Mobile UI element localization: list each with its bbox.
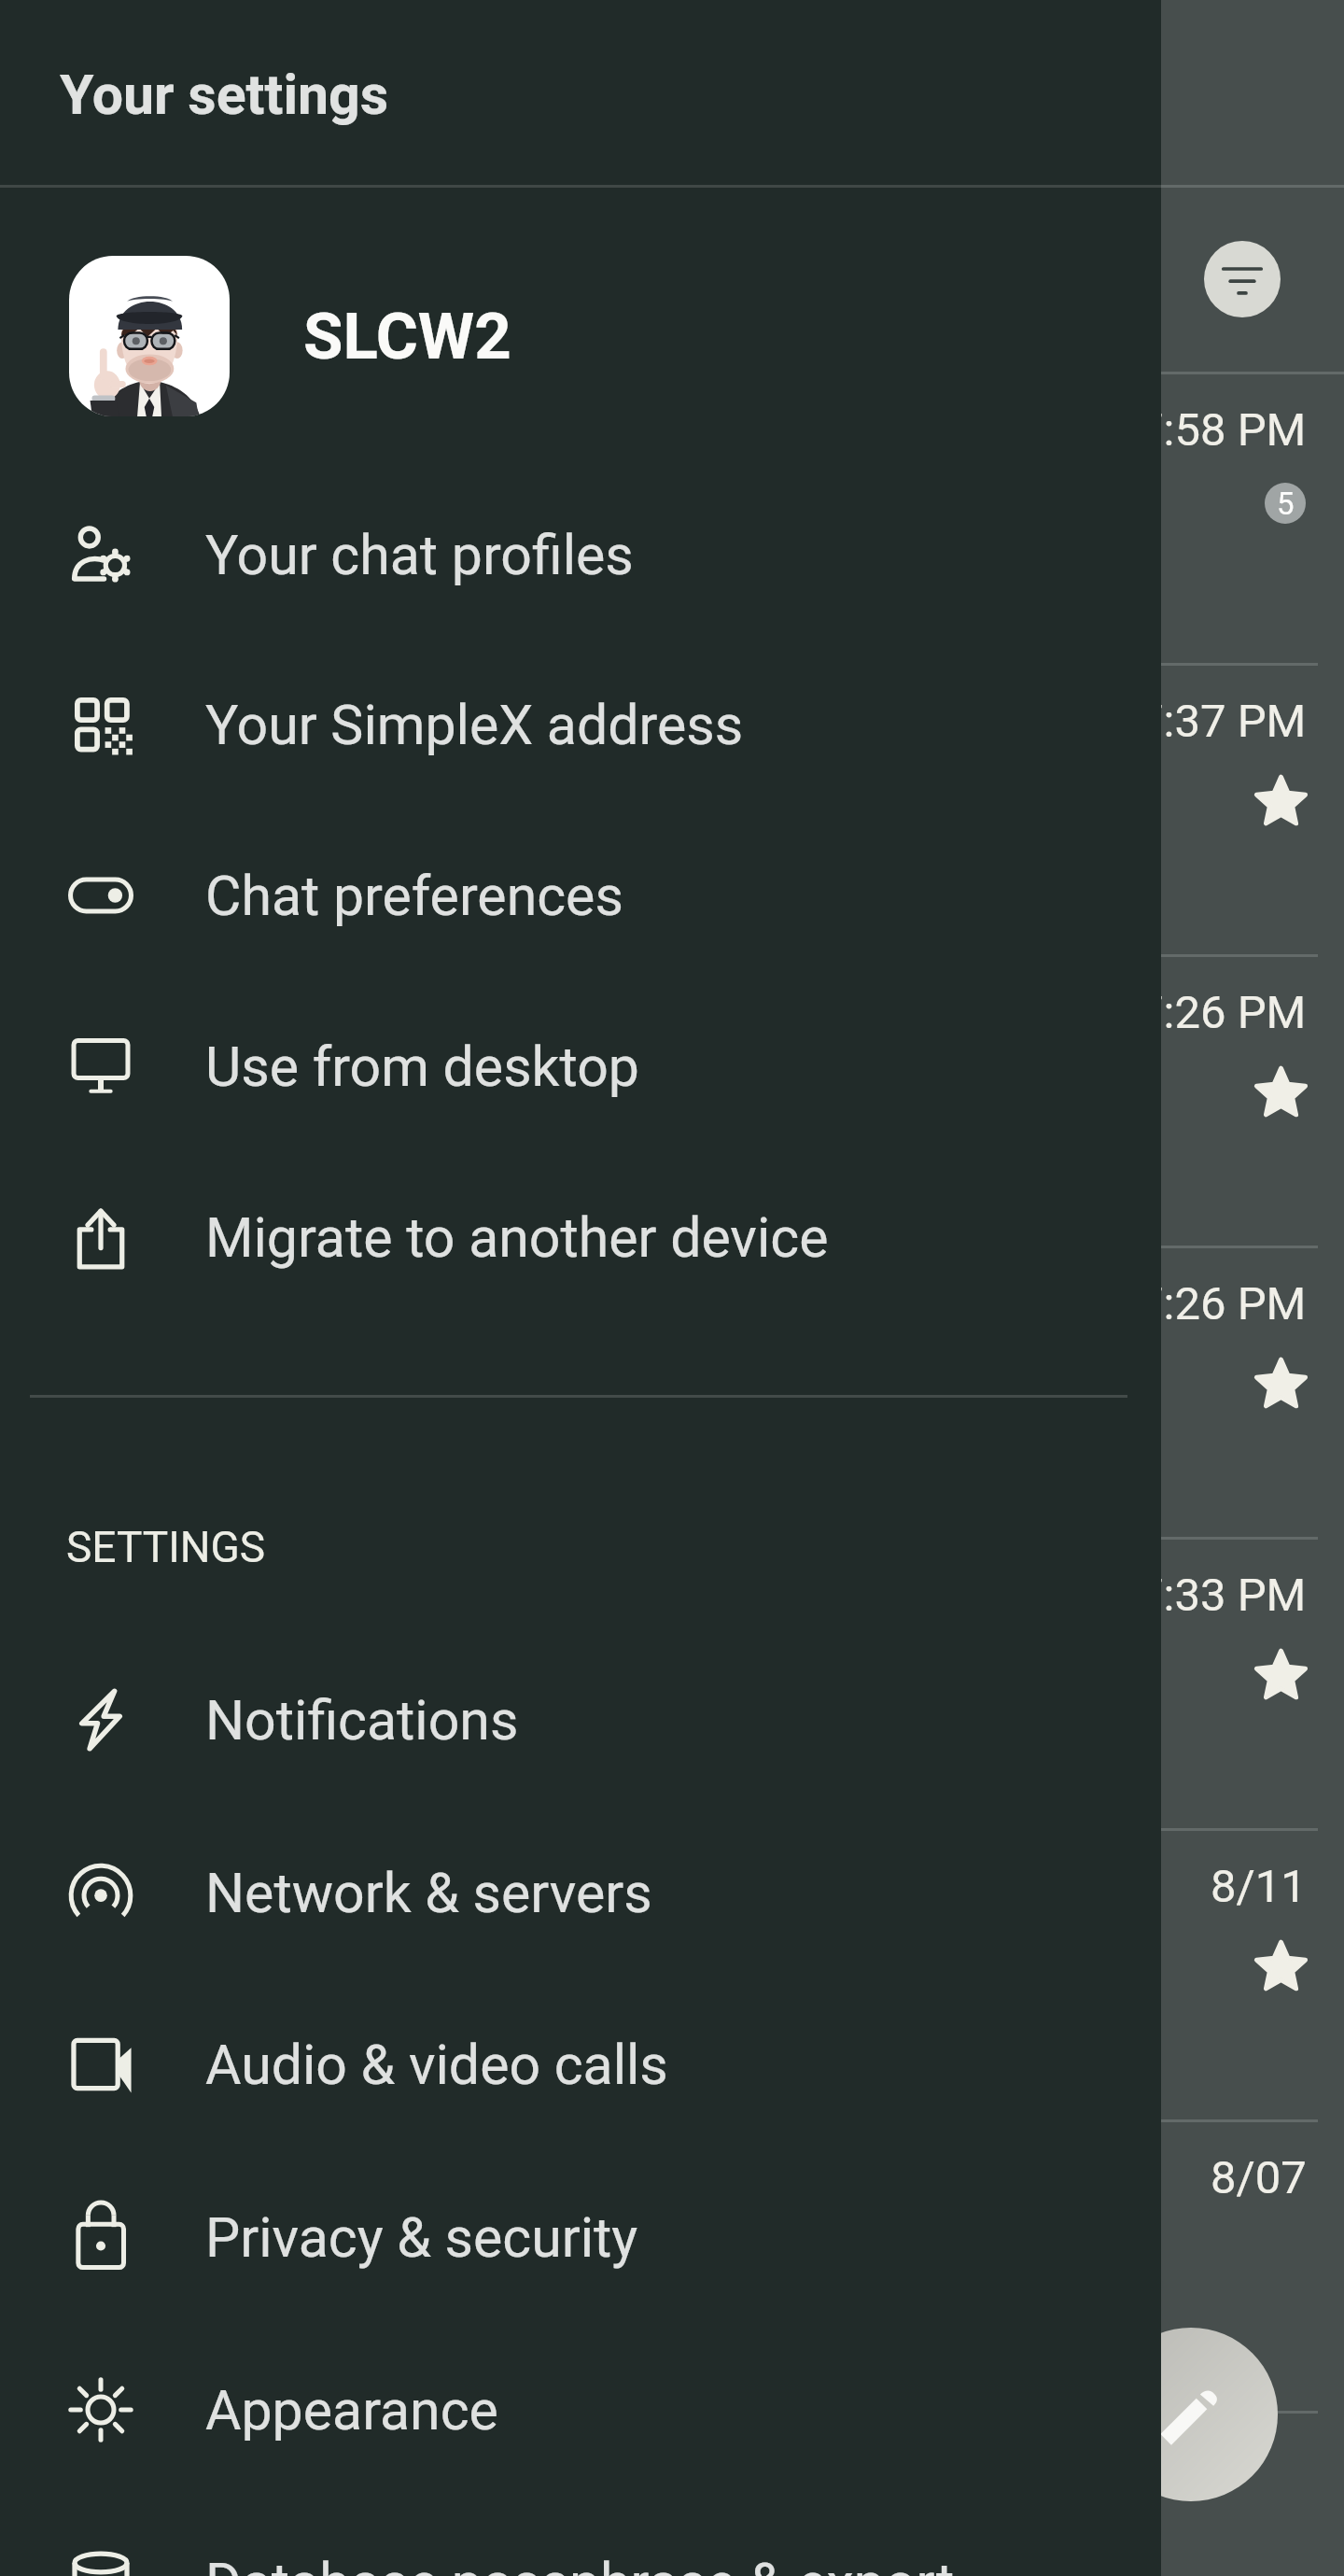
button[interactable]: Migrate to another device xyxy=(0,1152,1161,1322)
staticText: Chat preferences xyxy=(205,864,623,928)
staticText: SLCW2 xyxy=(303,299,511,374)
staticText: Your SimpleX address xyxy=(205,693,744,757)
staticText: Privacy & security xyxy=(205,2205,638,2270)
staticText: 7:33 PM xyxy=(1138,1569,1307,1622)
button[interactable]: Appearance xyxy=(0,2325,1161,2495)
staticText: 7:26 PM xyxy=(1138,1277,1307,1330)
button[interactable]: New chat xyxy=(1104,2328,1278,2501)
staticText: 5 xyxy=(1277,486,1295,522)
staticText: Audio & video calls xyxy=(205,2033,668,2097)
staticText: 8/07 xyxy=(1211,2151,1307,2204)
button[interactable]: Your SimpleX address xyxy=(0,640,1161,809)
staticText: Database passphrase & export xyxy=(205,2551,955,2576)
staticText: Migrate to another device xyxy=(205,1205,829,1270)
staticText: Your chat profiles xyxy=(205,523,634,587)
staticText: Use from desktop xyxy=(205,1035,639,1099)
button[interactable]: Privacy & security xyxy=(0,2152,1161,2322)
staticText: 7:26 PM xyxy=(1138,986,1307,1039)
button[interactable]: SLCW2 xyxy=(0,224,1161,448)
staticText: SETTINGS xyxy=(66,1522,266,1572)
staticText: Notifications xyxy=(205,1688,519,1753)
staticText: Network & servers xyxy=(205,1861,652,1925)
staticText: 8/11 xyxy=(1211,1860,1307,1913)
button[interactable]: Audio & video calls xyxy=(0,1979,1161,2149)
button[interactable]: Chat preferences xyxy=(0,810,1161,980)
button[interactable]: Your chat profiles xyxy=(0,470,1161,640)
staticText: Your settings xyxy=(60,63,389,127)
button[interactable]: Filter chats xyxy=(1204,241,1281,317)
button[interactable]: Database passphrase & export xyxy=(0,2498,1161,2576)
button[interactable]: Notifications xyxy=(0,1635,1161,1805)
button[interactable]: Use from desktop xyxy=(0,981,1161,1151)
staticText: 7:37 PM xyxy=(1138,695,1307,748)
staticText: Appearance xyxy=(205,2378,498,2442)
button[interactable]: Network & servers xyxy=(0,1808,1161,1978)
staticText: 7:58 PM xyxy=(1138,403,1307,457)
